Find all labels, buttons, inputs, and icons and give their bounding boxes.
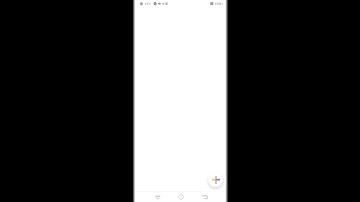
button[interactable]: Empty list bbox=[134, 9, 228, 191]
button[interactable]: Home bbox=[176, 192, 186, 202]
button[interactable]: Recents bbox=[153, 192, 163, 202]
button[interactable]: Back bbox=[200, 192, 210, 202]
button[interactable]: Create bbox=[208, 172, 223, 187]
